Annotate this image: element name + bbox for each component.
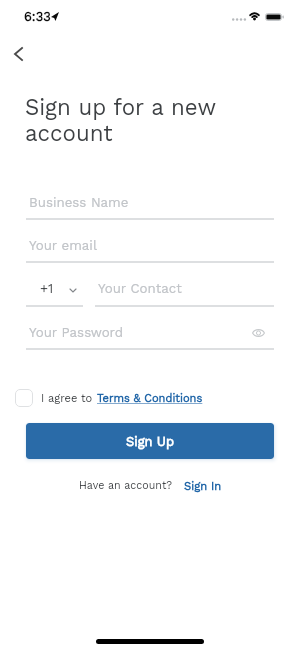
button[interactable]: I agree to terms checkbox — [15, 389, 33, 407]
button[interactable]: Terms & Conditions — [97, 392, 203, 405]
button[interactable]: Sign Up — [26, 423, 274, 459]
other: Show password — [252, 328, 265, 338]
button[interactable]: Select country code — [26, 275, 83, 301]
button[interactable]: Your Password — [26, 319, 274, 345]
staticText: 6:33 — [24, 9, 51, 24]
button[interactable]: Back — [4, 40, 32, 68]
staticText: Business Name — [29, 195, 129, 211]
staticText: +1 — [40, 281, 54, 297]
staticText: Sign In — [184, 479, 222, 492]
staticText: Your email — [29, 238, 97, 254]
staticText: Sign up for a new account — [25, 94, 225, 146]
button[interactable]: Your email — [26, 232, 274, 258]
staticText: Have an account? — [79, 479, 173, 492]
staticText: Sign Up — [126, 434, 175, 449]
staticText: I agree to — [41, 392, 97, 405]
button[interactable]: Business Name — [26, 189, 274, 215]
staticText: Your Contact — [98, 281, 182, 297]
staticText: Terms & Conditions — [97, 392, 203, 405]
staticText: Your Password — [29, 325, 124, 341]
button[interactable]: Your Contact — [95, 275, 274, 301]
button[interactable]: Sign In — [184, 479, 222, 492]
